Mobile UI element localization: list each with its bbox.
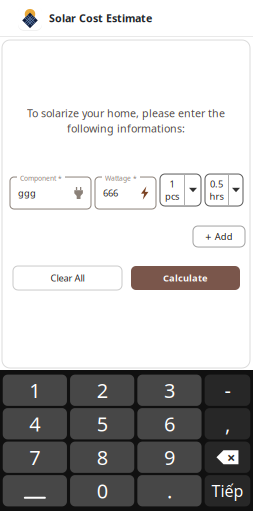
button[interactable]: Clear All: [13, 266, 122, 290]
staticText: Clear All: [50, 272, 84, 284]
staticText: +: [205, 229, 211, 244]
button[interactable]: 4: [3, 408, 67, 439]
button[interactable]: 0.5: [205, 174, 243, 206]
button[interactable]: Space: [3, 475, 67, 506]
staticText: Wattage *: [105, 174, 137, 183]
button[interactable]: Delete: [205, 442, 250, 473]
staticText: .: [167, 477, 172, 504]
staticText: 1: [169, 178, 174, 190]
staticText: Calculate: [163, 272, 208, 284]
staticText: 8: [97, 444, 108, 471]
staticText: To solarize your home, please enter the: [27, 106, 225, 120]
button[interactable]: 5: [70, 408, 134, 439]
button[interactable]: 9: [137, 442, 201, 473]
button[interactable]: 6: [137, 408, 201, 439]
staticText: -: [224, 377, 230, 404]
staticText: 4: [29, 410, 40, 437]
staticText: 3: [164, 377, 175, 404]
staticText: 2: [97, 377, 108, 404]
staticText: ggg: [18, 187, 36, 199]
button[interactable]: Minus: [205, 375, 250, 406]
button[interactable]: 3: [137, 375, 201, 406]
button[interactable]: 0: [70, 475, 134, 506]
staticText: Component *: [20, 174, 62, 183]
button[interactable]: .: [137, 475, 201, 506]
staticText: Tiếp: [211, 480, 243, 501]
staticText: 6: [164, 410, 175, 437]
staticText: ×: [227, 447, 235, 467]
staticText: Solar Cost Estimate: [49, 11, 152, 25]
button[interactable]: Calculate: [131, 266, 240, 290]
staticText: 5: [97, 410, 108, 437]
staticText: 1: [29, 377, 40, 404]
button[interactable]: Comma: [205, 408, 250, 439]
button[interactable]: 1: [3, 375, 67, 406]
staticText: pcs: [165, 190, 179, 202]
staticText: ,: [225, 410, 230, 437]
staticText: 7: [29, 444, 40, 471]
button[interactable]: 2: [70, 375, 134, 406]
button[interactable]: +: [193, 226, 245, 247]
staticText: 666: [103, 187, 118, 199]
staticText: following informations:: [67, 121, 185, 135]
button[interactable]: Next: [205, 475, 250, 506]
button[interactable]: 1: [160, 174, 201, 206]
staticText: hrs: [209, 190, 223, 202]
staticText: 0: [97, 477, 108, 504]
button[interactable]: 8: [70, 442, 134, 473]
staticText: 0.5: [210, 178, 223, 190]
button[interactable]: 7: [3, 442, 67, 473]
staticText: Add: [215, 230, 233, 243]
staticText: 9: [164, 444, 175, 471]
